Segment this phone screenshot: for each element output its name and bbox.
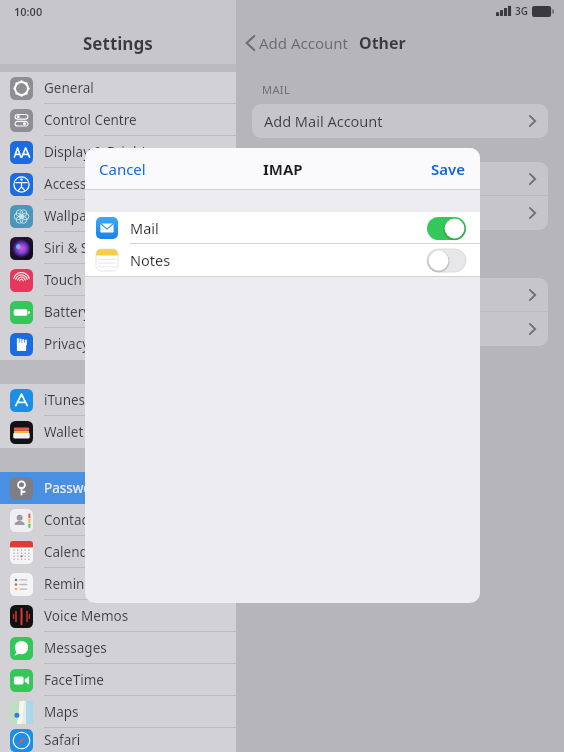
staticText: Privacy	[44, 335, 90, 353]
staticText: General	[44, 79, 94, 97]
button[interactable]: Siri & Search	[0, 232, 236, 264]
button[interactable]	[252, 312, 548, 346]
button[interactable]: Control Centre	[0, 104, 236, 136]
button[interactable]: Wallpaper	[0, 200, 236, 232]
staticText: Siri & Search	[44, 239, 124, 257]
staticText: MAIL	[262, 82, 291, 97]
staticText: 10:00	[14, 4, 43, 19]
button[interactable]: Battery	[0, 296, 236, 328]
staticText: Maps	[44, 703, 79, 721]
staticText: Reminders	[44, 575, 113, 593]
button[interactable]: Add Account	[246, 33, 348, 53]
button[interactable]: Messages	[0, 632, 236, 664]
staticText: FaceTime	[44, 671, 104, 689]
button[interactable]	[252, 162, 548, 196]
button[interactable]: General	[0, 72, 236, 104]
staticText: Calendar	[44, 543, 101, 561]
button[interactable]: Save	[417, 148, 480, 189]
button[interactable]: Voice Memos	[0, 600, 236, 632]
staticText: Wallpaper	[44, 207, 109, 225]
staticText: Add Account	[259, 33, 348, 53]
staticText: Contacts	[44, 511, 100, 529]
button[interactable]: Off	[427, 249, 466, 272]
staticText: IMAP	[263, 159, 303, 179]
staticText: iTunes & App Store	[44, 391, 165, 409]
staticText: Cancel	[99, 159, 146, 179]
button[interactable]: Safari	[0, 728, 236, 752]
staticText: Passwords & Accounts	[44, 479, 187, 497]
staticText: Battery	[44, 303, 91, 321]
button[interactable]	[252, 196, 548, 230]
staticText: Mail	[130, 218, 159, 238]
button[interactable]: Add Mail Account	[252, 104, 548, 138]
button[interactable]: Touch ID & Passcode	[0, 264, 236, 296]
staticText: Notes	[130, 250, 171, 270]
button[interactable]: Reminders	[0, 568, 236, 600]
button[interactable]: Cancel	[85, 148, 160, 189]
staticText: Save	[431, 159, 466, 179]
staticText: Voice Memos	[44, 607, 129, 625]
button[interactable]: Notes	[85, 244, 480, 276]
button[interactable]: Accessibility	[0, 168, 236, 200]
button[interactable]: Display & Brightness	[0, 136, 236, 168]
button[interactable]: Mail	[85, 212, 480, 244]
staticText: Add Mail Account	[264, 111, 383, 131]
staticText: Wallet & Apple Pay	[44, 423, 163, 441]
button[interactable]: Privacy	[0, 328, 236, 360]
button[interactable]	[252, 278, 548, 312]
staticText: 3G	[515, 4, 528, 18]
staticText: Messages	[44, 639, 107, 657]
button[interactable]: Calendar	[0, 536, 236, 568]
button[interactable]: FaceTime	[0, 664, 236, 696]
staticText: Control Centre	[44, 111, 137, 129]
button[interactable]: Contacts	[0, 504, 236, 536]
button[interactable]: On	[427, 217, 466, 240]
staticText: Accessibility	[44, 175, 121, 193]
staticText: Settings	[83, 32, 153, 55]
button[interactable]: Wallet & Apple Pay	[0, 416, 236, 448]
staticText: Other	[359, 32, 406, 54]
button[interactable]: Maps	[0, 696, 236, 728]
button[interactable]: iTunes & App Store	[0, 384, 236, 416]
staticText: Safari	[44, 731, 81, 749]
button[interactable]: Passwords & Accounts	[0, 472, 236, 504]
staticText: Touch ID & Passcode	[44, 271, 176, 289]
staticText: Display & Brightness	[44, 143, 176, 161]
